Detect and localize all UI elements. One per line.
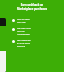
button[interactable]: Pay with your card on Marketplace <box>0 27 64 36</box>
staticText: Marketplace purchases <box>0 7 64 11</box>
staticText: Pay with your card on Marketplace <box>17 27 32 36</box>
staticText: Get cashback in your bank account <box>17 39 32 48</box>
staticText: Find an item you love <box>17 18 32 24</box>
staticText: Earn cashback on <box>0 3 64 7</box>
button[interactable]: Find an item you love <box>0 18 64 24</box>
button[interactable]: Get cashback in your bank account <box>0 39 64 48</box>
